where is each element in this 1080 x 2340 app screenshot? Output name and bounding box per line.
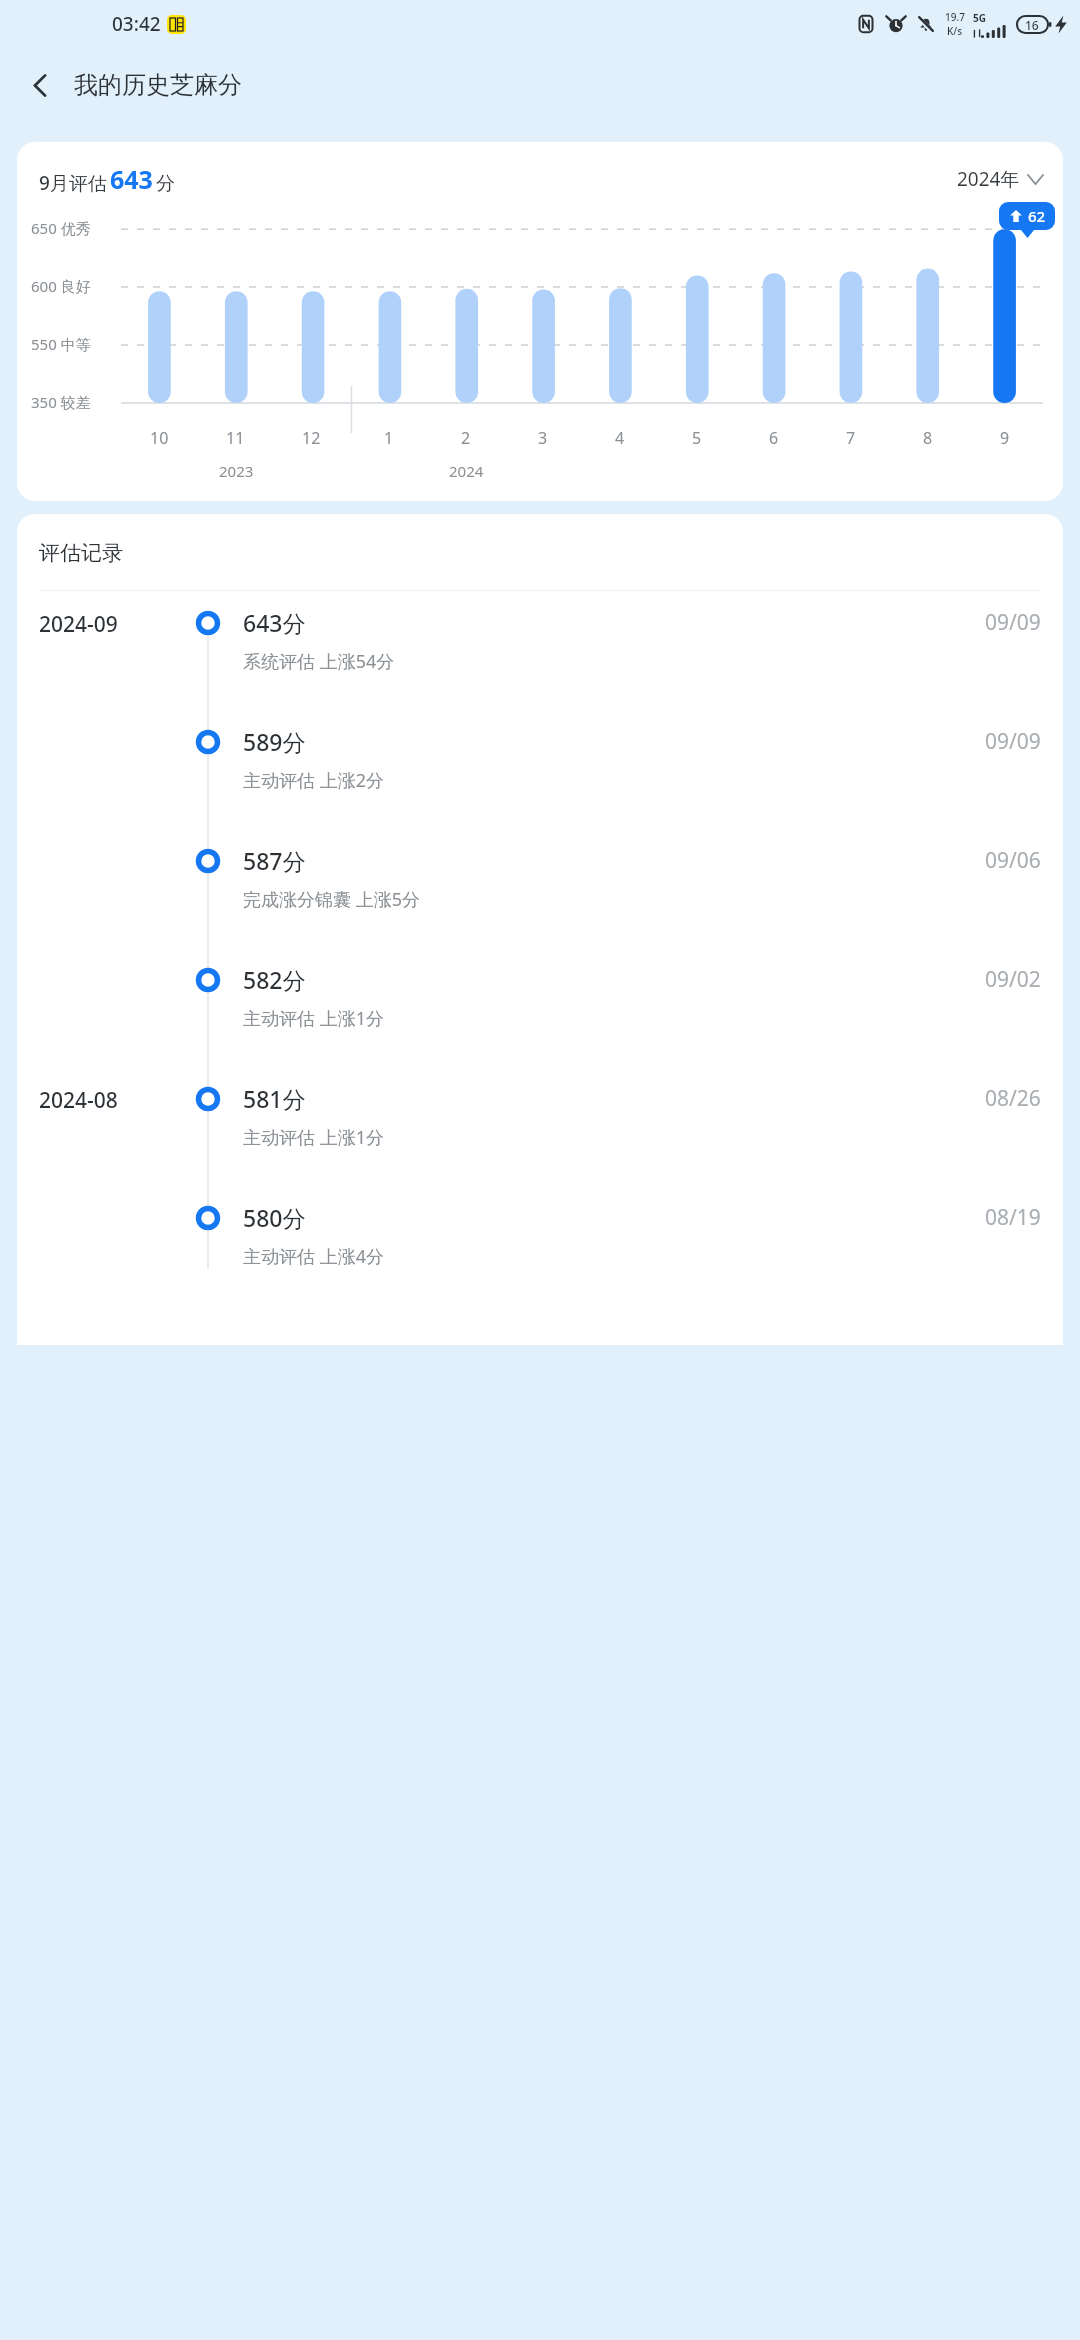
staticText: 5G xyxy=(973,11,986,25)
staticText: 09/06 xyxy=(985,846,1041,875)
staticText: 9月评估 xyxy=(39,170,107,196)
staticText: 09/09 xyxy=(985,727,1041,756)
staticText: 650 优秀 xyxy=(31,218,91,238)
staticText: 19.7 xyxy=(945,10,965,24)
staticText: 8 xyxy=(923,427,933,449)
staticText: 4 xyxy=(615,427,625,449)
staticText: 主动评估 上涨4分 xyxy=(243,1244,384,1269)
button[interactable]: 2024-08 xyxy=(17,1067,1063,1186)
button[interactable]: 2024年 xyxy=(957,166,1043,192)
staticText: 系统评估 上涨54分 xyxy=(243,649,395,674)
staticText: 581分 xyxy=(243,1083,306,1114)
staticText: 16 xyxy=(1025,17,1039,33)
staticText: 550 中等 xyxy=(31,334,91,354)
button[interactable]: 2024-09 xyxy=(17,591,1063,710)
staticText: 09/02 xyxy=(985,965,1041,994)
staticText: 587分 xyxy=(243,845,306,876)
staticText: 分 xyxy=(156,172,175,196)
staticText: 643 xyxy=(110,162,153,196)
button[interactable]: Back xyxy=(16,61,64,109)
staticText: 582分 xyxy=(243,964,306,995)
button[interactable]: 582分 xyxy=(17,948,1063,1067)
staticText: 62 xyxy=(1028,206,1046,226)
staticText: 完成涨分锦囊 上涨5分 xyxy=(243,887,420,912)
staticText: 2024年 xyxy=(957,166,1020,192)
staticText: 主动评估 上涨1分 xyxy=(243,1125,384,1150)
staticText: 我的历史芝麻分 xyxy=(74,70,242,100)
staticText: 580分 xyxy=(243,1202,306,1233)
staticText: 10 xyxy=(150,427,169,449)
staticText: 09/09 xyxy=(985,608,1041,637)
staticText: 5 xyxy=(692,427,702,449)
button[interactable]: 589分 xyxy=(17,710,1063,829)
staticText: 600 良好 xyxy=(31,276,91,296)
staticText: 2024 xyxy=(449,461,484,481)
staticText: 6 xyxy=(769,427,779,449)
staticText: K/s xyxy=(947,24,963,38)
staticText: 2024-09 xyxy=(39,610,118,639)
staticText: 2024-08 xyxy=(39,1086,118,1115)
staticText: 08/19 xyxy=(985,1203,1041,1232)
staticText: 03:42 xyxy=(112,11,161,37)
staticText: 12 xyxy=(302,427,321,449)
staticText: 2023 xyxy=(219,461,254,481)
staticText: 643分 xyxy=(243,607,306,638)
staticText: 08/26 xyxy=(985,1084,1041,1113)
staticText: 11 xyxy=(226,427,245,449)
staticText: 7 xyxy=(846,427,856,449)
button[interactable]: 587分 xyxy=(17,829,1063,948)
staticText: 评估记录 xyxy=(39,540,123,566)
staticText: 3 xyxy=(538,427,548,449)
button[interactable]: 580分 xyxy=(17,1186,1063,1305)
staticText: 主动评估 上涨2分 xyxy=(243,768,384,793)
staticText: 589分 xyxy=(243,726,306,757)
staticText: 350 较差 xyxy=(31,392,91,412)
staticText: 9 xyxy=(1000,427,1010,449)
staticText: 主动评估 上涨1分 xyxy=(243,1006,384,1031)
staticText: 1 xyxy=(384,427,394,449)
staticText: 2 xyxy=(461,427,471,449)
